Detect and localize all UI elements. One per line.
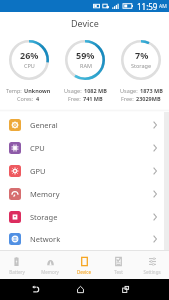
staticText: 26% <box>20 49 39 61</box>
staticText: CPU <box>24 62 35 69</box>
staticText: Temp: <box>6 87 22 94</box>
button[interactable]: Network <box>0 228 164 250</box>
staticText: Cores: <box>17 95 34 102</box>
staticText: 11:59 <box>137 1 158 12</box>
button[interactable]: Back <box>22 279 48 300</box>
button[interactable]: Recents <box>113 279 139 300</box>
button[interactable]: Test <box>101 251 135 279</box>
staticText: Memory <box>30 189 60 199</box>
staticText: Battery <box>9 269 25 275</box>
button[interactable]: Battery <box>0 251 33 279</box>
button[interactable]: Device <box>67 251 101 279</box>
staticText: Unknown <box>24 87 51 94</box>
staticText: Settings <box>143 269 161 275</box>
staticText: 4 <box>36 95 40 102</box>
staticText: Free: <box>121 95 134 102</box>
staticText: AM <box>159 3 167 10</box>
button[interactable]: General <box>0 113 164 136</box>
staticText: 59% <box>76 49 95 61</box>
staticText: GPU <box>30 166 46 176</box>
staticText: 7% <box>135 49 149 61</box>
staticText: Storage <box>131 62 152 69</box>
staticText: CPU <box>30 143 45 153</box>
staticText: Memory <box>41 269 59 275</box>
staticText: 23029MB <box>136 95 161 102</box>
staticText: 741 MB <box>83 95 103 102</box>
staticText: Device <box>77 269 91 275</box>
staticText: RAM <box>80 62 92 69</box>
button[interactable]: Home <box>67 279 93 300</box>
button[interactable]: Memory <box>0 182 164 205</box>
staticText: General <box>30 120 58 130</box>
button[interactable]: CPU <box>0 136 164 159</box>
staticText: 1082 MB <box>84 87 107 94</box>
button[interactable]: GPU <box>0 159 164 182</box>
staticText: Test <box>114 269 123 275</box>
button[interactable]: Storage <box>0 205 164 228</box>
staticText: Network <box>30 234 61 244</box>
button[interactable]: Memory <box>33 251 67 279</box>
staticText: Device <box>71 17 99 29</box>
staticText: 1873 MB <box>140 87 163 94</box>
button[interactable]: Settings <box>135 251 169 279</box>
staticText: Free: <box>68 95 81 102</box>
staticText: Usage: <box>64 87 82 94</box>
staticText: Storage <box>30 212 58 222</box>
staticText: Usage: <box>120 87 138 94</box>
